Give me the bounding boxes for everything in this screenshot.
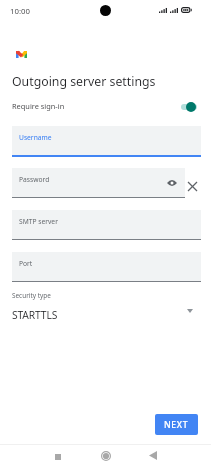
button[interactable]: Clear (184, 178, 200, 194)
staticText: Password (19, 175, 50, 184)
staticText: 10:00 (10, 6, 30, 17)
button[interactable]: Show password (165, 176, 179, 190)
button[interactable]: Security type (0, 291, 211, 322)
staticText: Port (19, 259, 33, 268)
button[interactable]: SMTP server (12, 210, 201, 239)
button[interactable]: Password (12, 168, 185, 197)
button[interactable]: Back (140, 443, 165, 468)
button[interactable]: Require sign-in (0, 98, 211, 114)
button[interactable]: Home (93, 443, 118, 468)
staticText: Username (19, 133, 52, 142)
staticText: Require sign-in (12, 101, 65, 111)
button[interactable]: Port (12, 252, 201, 281)
staticText: SMTP server (19, 217, 58, 226)
staticText: Outgoing server settings (12, 73, 156, 90)
button[interactable]: Recents (45, 444, 70, 469)
button[interactable]: Username (12, 126, 201, 155)
button[interactable]: NEXT (155, 414, 198, 435)
staticText: STARTTLS (12, 308, 58, 322)
staticText: NEXT (164, 419, 189, 431)
staticText: Security type (12, 291, 51, 300)
